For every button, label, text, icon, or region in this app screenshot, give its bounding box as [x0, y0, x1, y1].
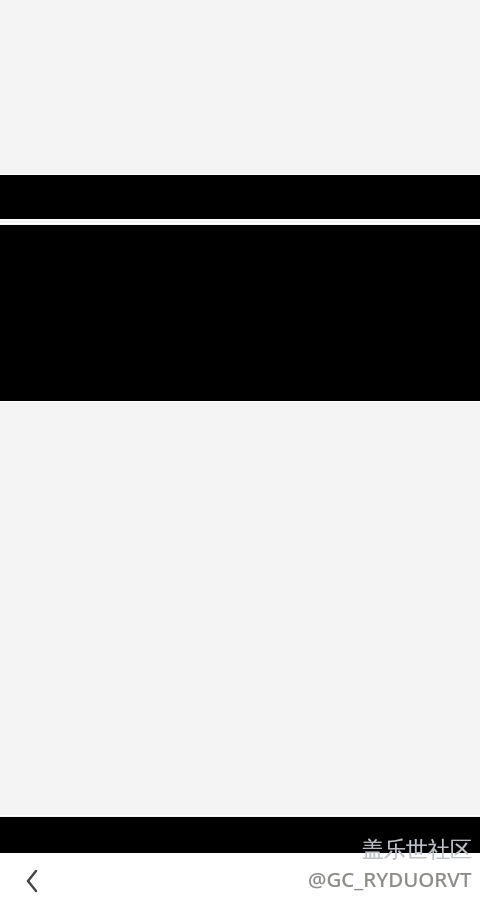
staticText: @GC_RYDUORVT	[308, 865, 472, 893]
button[interactable]: Back	[9, 867, 55, 895]
button[interactable]	[0, 817, 480, 853]
staticText: 盖乐世社区	[362, 836, 472, 864]
